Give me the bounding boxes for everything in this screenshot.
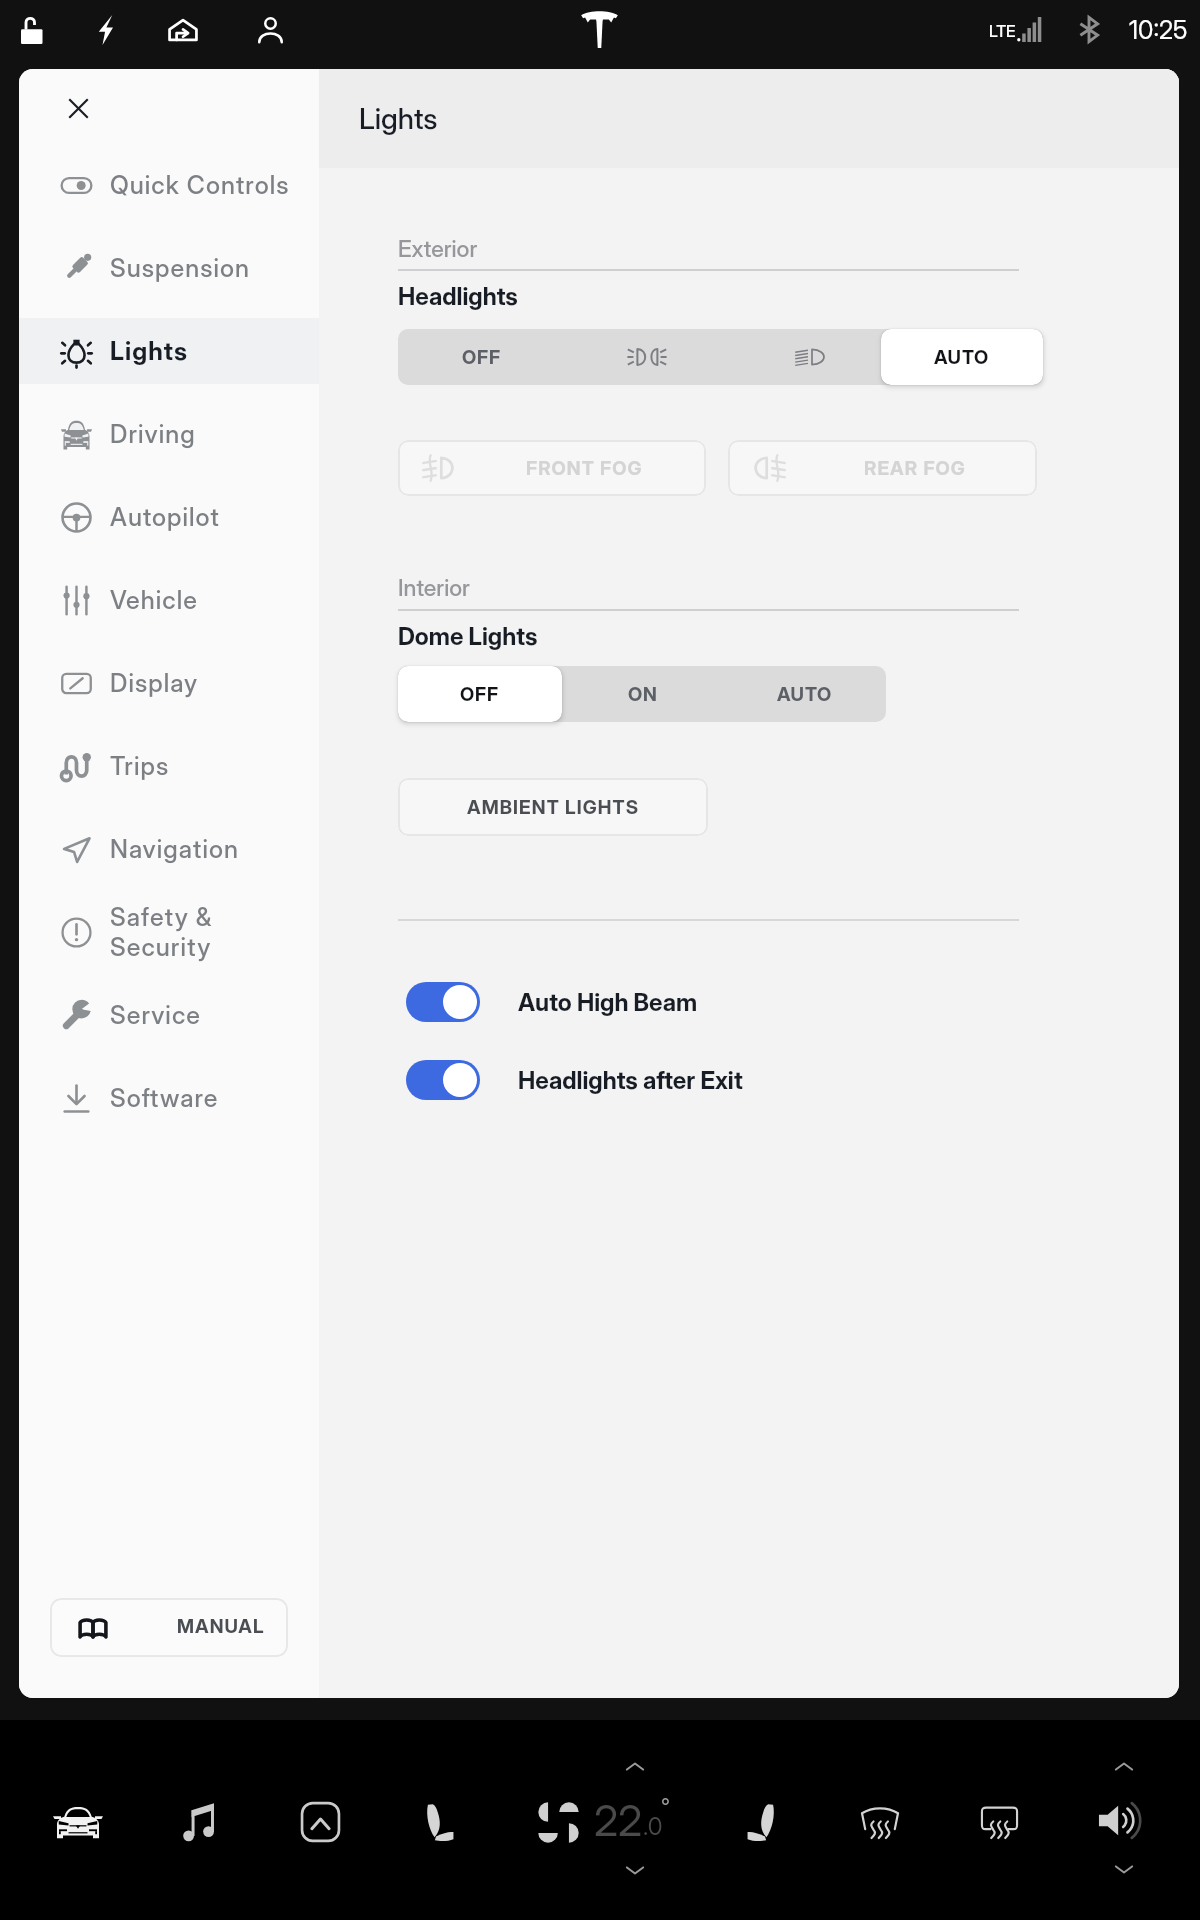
button[interactable]: Left seat heater [393,1776,485,1868]
button[interactable]: Safety & Security [19,899,319,965]
staticText: Exterior [398,235,478,263]
button[interactable]: MANUAL [50,1598,288,1657]
button[interactable]: AUTO [724,666,886,722]
button[interactable]: Close [48,78,108,138]
button[interactable]: OFF [401,329,562,385]
staticText: OFF [460,683,500,706]
staticText: LTE [989,21,1016,40]
button[interactable]: Software [19,1065,319,1131]
staticText: Dome Lights [398,622,538,651]
button[interactable]: Right seat heater [715,1776,807,1868]
staticText: Service [110,1000,201,1030]
button[interactable]: Vehicle [19,567,319,633]
button[interactable]: Expand [274,1776,366,1868]
staticText: Suspension [110,253,251,283]
staticText: Interior [398,574,470,602]
button[interactable]: Front defrost [953,1776,1045,1868]
button[interactable]: Media [154,1776,246,1868]
staticText: OFF [462,346,502,369]
staticText: REAR FOG [864,457,966,480]
button[interactable]: Charging [71,0,139,68]
button[interactable]: Volume [1086,1788,1158,1852]
staticText: Vehicle [110,585,198,615]
staticText: Headlights after Exit [518,1066,743,1095]
button[interactable]: Lock [0,0,67,68]
staticText: Lights [359,101,438,136]
staticText: Navigation [110,834,239,864]
staticText: AMBIENT LIGHTS [467,796,640,819]
staticText: Quick Controls [110,170,290,200]
staticText: 10:25 [1129,15,1188,45]
button[interactable]: Suspension [19,235,319,301]
staticText: FRONT FOG [526,457,643,480]
button[interactable] [731,329,892,385]
button[interactable]: AUTO [881,329,1043,385]
button[interactable]: Home [149,0,217,68]
staticText: ON [628,683,658,706]
button[interactable]: FRONT FOG [398,440,706,496]
button[interactable]: Navigation [19,816,319,882]
button[interactable]: Driving [19,401,319,467]
button[interactable]: Decrease temperature [613,1848,657,1892]
button[interactable]: Increase temperature [613,1744,657,1788]
button[interactable]: Auto High Beam [398,982,1019,1022]
staticText: Safety & Security [110,902,213,962]
button[interactable]: OFF [398,666,562,722]
button[interactable]: Volume down [1102,1847,1146,1891]
button[interactable]: Car [32,1776,124,1868]
staticText: Headlights [398,282,518,311]
button[interactable]: Volume up [1102,1744,1146,1788]
button[interactable]: AMBIENT LIGHTS [398,778,708,836]
button[interactable]: Fan [512,1776,604,1868]
button[interactable]: Lights [19,318,319,384]
staticText: Trips [110,751,170,781]
button[interactable]: Service [19,982,319,1048]
staticText: ° [661,1794,670,1819]
button[interactable]: ON [562,666,724,722]
staticText: AUTO [934,346,990,369]
staticText: Display [110,668,199,698]
button[interactable]: REAR FOG [728,440,1037,496]
button[interactable]: Autopilot [19,484,319,550]
button[interactable]: Trips [19,733,319,799]
staticText: MANUAL [177,1615,265,1638]
staticText: Auto High Beam [518,988,698,1017]
button[interactable]: Profile [236,0,304,68]
button[interactable]: Quick Controls [19,152,319,218]
staticText: .0 [643,1812,663,1841]
staticText: AUTO [777,683,833,706]
staticText: Software [110,1083,219,1113]
button[interactable]: Rear defrost [834,1776,926,1868]
button[interactable] [566,329,727,385]
button[interactable]: Headlights after Exit [398,1060,1019,1100]
staticText: Driving [110,419,196,449]
button[interactable]: Display [19,650,319,716]
staticText: Lights [110,336,188,366]
staticText: Autopilot [110,502,220,532]
staticText: 22 [594,1794,643,1846]
